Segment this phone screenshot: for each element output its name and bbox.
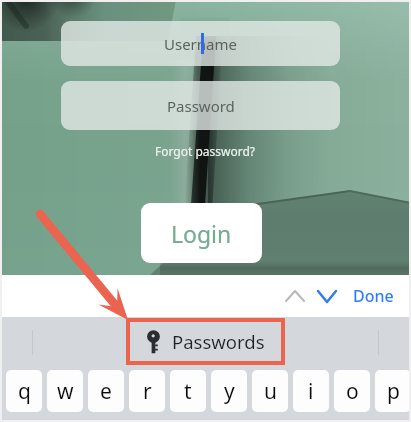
button[interactable]: Password (61, 81, 340, 130)
button[interactable]: e (88, 370, 124, 412)
staticText: w (57, 377, 74, 406)
button[interactable]: o (334, 370, 370, 412)
staticText: i (308, 377, 314, 406)
button[interactable]: y (211, 370, 247, 412)
button[interactable]: t (170, 370, 206, 412)
button[interactable]: Next field (311, 279, 343, 313)
staticText: Password (167, 96, 235, 116)
button[interactable]: i (293, 370, 329, 412)
staticText: t (184, 377, 192, 406)
staticText: Passwords (172, 329, 265, 354)
button[interactable]: Login (141, 203, 262, 263)
staticText: p (387, 377, 400, 406)
staticText: e (100, 377, 112, 406)
button[interactable]: q (6, 370, 42, 412)
button[interactable]: Username (61, 21, 340, 66)
button[interactable]: Done (351, 279, 396, 313)
staticText: u (264, 377, 277, 406)
staticText: Login (171, 218, 232, 249)
staticText: Done (353, 285, 394, 307)
staticText: q (18, 377, 31, 406)
button[interactable]: Previous field (279, 279, 311, 313)
staticText: Username (164, 34, 237, 54)
staticText: y (224, 377, 235, 406)
button[interactable]: w (47, 370, 83, 412)
button[interactable]: r (129, 370, 165, 412)
staticText: r (143, 377, 152, 406)
staticText: Forgot password? (155, 143, 256, 159)
staticText: o (346, 377, 359, 406)
button[interactable]: Passwords (128, 320, 283, 363)
button[interactable]: u (252, 370, 288, 412)
button[interactable]: Forgot password? (140, 140, 271, 161)
button[interactable]: p (375, 370, 411, 412)
